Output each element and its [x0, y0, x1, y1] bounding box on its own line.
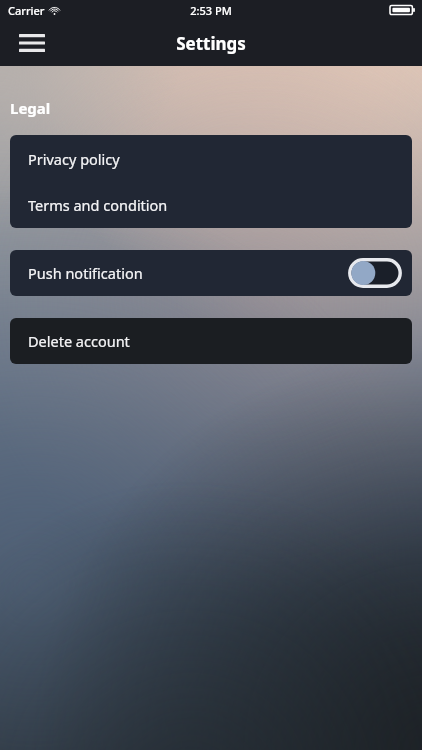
- staticText: Terms and condition: [28, 195, 168, 215]
- staticText: Privacy policy: [28, 149, 120, 169]
- staticText: Delete account: [28, 331, 130, 351]
- staticText: 2:53 PM: [190, 3, 232, 18]
- button[interactable]: Open navigation menu: [12, 23, 52, 63]
- button[interactable]: Toggle push notification: [348, 258, 402, 288]
- button[interactable]: Delete account: [10, 318, 412, 364]
- staticText: Settings: [176, 32, 246, 55]
- staticText: Push notification: [28, 263, 143, 283]
- button[interactable]: Privacy policy: [10, 135, 412, 182]
- button[interactable]: Terms and condition: [10, 182, 412, 228]
- staticText: Carrier: [8, 3, 45, 18]
- staticText: Legal: [10, 98, 51, 118]
- button[interactable]: Push notification: [10, 250, 412, 296]
